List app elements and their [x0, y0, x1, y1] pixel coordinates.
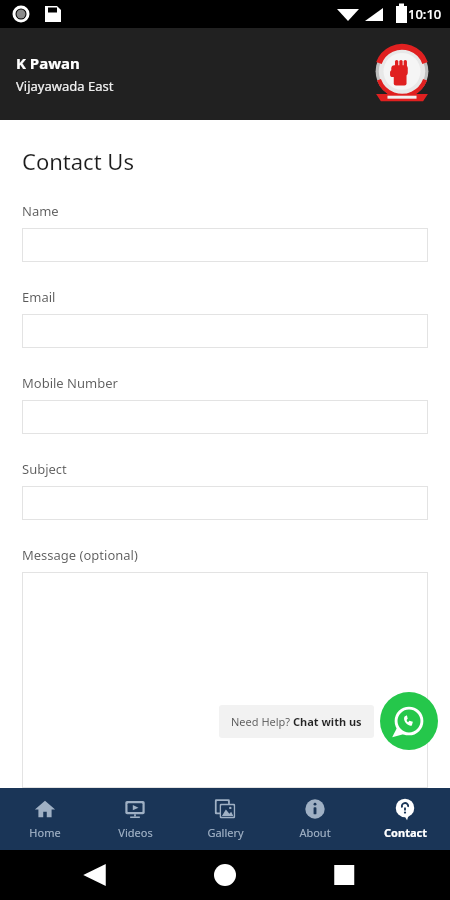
staticText: Vijayawada East	[16, 77, 114, 95]
button[interactable]	[22, 228, 428, 262]
button[interactable]: Need Help?	[219, 705, 374, 738]
button[interactable]: Home	[0, 788, 90, 850]
button[interactable]: About	[270, 788, 360, 850]
staticText: Email	[22, 288, 56, 306]
button[interactable]	[22, 314, 428, 348]
staticText: Contact Us	[22, 146, 134, 176]
staticText: Home	[29, 825, 61, 840]
button[interactable]: Videos	[90, 788, 180, 850]
staticText: About	[299, 825, 331, 840]
staticText: Need Help?	[231, 714, 293, 729]
button[interactable]	[22, 400, 428, 434]
staticText: Gallery	[207, 825, 244, 840]
staticText: 10:10	[408, 5, 442, 23]
button[interactable]: Contact	[360, 788, 450, 850]
button[interactable]: Party emblem	[369, 41, 435, 107]
staticText: Subject	[22, 460, 67, 478]
button[interactable]	[22, 486, 428, 520]
staticText: Message (optional)	[22, 546, 138, 564]
staticText: Chat with us	[293, 714, 362, 729]
button[interactable]: Gallery	[180, 788, 270, 850]
staticText: Mobile Number	[22, 374, 118, 392]
staticText: K Pawan	[16, 53, 80, 73]
button[interactable]	[22, 572, 428, 788]
staticText: Name	[22, 202, 59, 220]
button[interactable]: Chat on WhatsApp	[380, 692, 438, 750]
staticText: Contact	[384, 825, 427, 840]
staticText: Videos	[118, 825, 153, 840]
